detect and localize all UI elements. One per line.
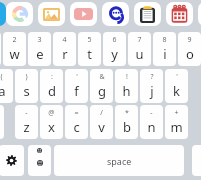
staticText: x (48, 118, 55, 136)
staticText: 8 (162, 35, 167, 45)
staticText: * (125, 108, 129, 118)
button[interactable]: ) (15, 69, 38, 103)
staticText: j (150, 82, 154, 100)
button[interactable]: & (90, 69, 113, 103)
staticText: ? (150, 72, 154, 82)
staticText: u (135, 45, 144, 63)
staticText: f (74, 82, 79, 100)
staticText: ' (176, 72, 178, 82)
button[interactable]: + (165, 105, 188, 139)
button[interactable]: ? (140, 69, 163, 103)
staticText: w (9, 45, 20, 63)
button[interactable]: Clipboard (134, 2, 161, 26)
staticText: i (163, 45, 167, 63)
staticText: space (107, 155, 132, 167)
staticText: 9 (187, 35, 192, 45)
staticText: n (147, 118, 156, 136)
button[interactable]: Google (6, 2, 33, 26)
button[interactable]: Photos (38, 2, 65, 26)
staticText: a (0, 82, 6, 100)
button[interactable]: Enter (192, 145, 201, 176)
staticText: ( (0, 72, 3, 82)
button[interactable]: 6 (103, 32, 126, 66)
button[interactable]: ' (65, 69, 88, 103)
staticText: 2 (12, 35, 17, 45)
staticText: b (123, 118, 131, 136)
staticText: c (73, 118, 80, 136)
button[interactable]: space (54, 145, 184, 176)
button[interactable]: * (115, 105, 138, 139)
button[interactable]: Emoji (28, 145, 51, 176)
staticText: - (25, 108, 28, 118)
button[interactable]: @ (40, 105, 63, 139)
button[interactable]: Shift (0, 105, 4, 139)
staticText: t (87, 45, 92, 63)
staticText: v (98, 118, 105, 136)
staticText: - (150, 108, 153, 118)
button[interactable]: / (90, 105, 113, 139)
staticText: 3 (37, 35, 42, 45)
staticText: e (36, 45, 44, 63)
staticText: o (186, 45, 194, 63)
button[interactable]: ! (115, 69, 138, 103)
button[interactable]: 7 (128, 32, 151, 66)
button[interactable]: 1 (0, 32, 1, 66)
staticText: ) (25, 72, 28, 82)
button[interactable]: Settings (0, 145, 24, 176)
button[interactable]: ( (0, 69, 13, 103)
button[interactable]: - (140, 105, 163, 139)
staticText: m (170, 118, 183, 136)
button[interactable]: : (40, 69, 63, 103)
button[interactable]: Messages (102, 2, 129, 26)
button[interactable]: 5 (78, 32, 101, 66)
staticText: k (173, 82, 180, 100)
button[interactable]: More (198, 2, 201, 26)
staticText: h (122, 82, 131, 100)
staticText: 7 (137, 35, 142, 45)
button[interactable]: Search (0, 2, 6, 26)
staticText: s (23, 82, 30, 100)
staticText: : (51, 72, 53, 82)
staticText: / (100, 108, 103, 118)
staticText: ! (126, 72, 128, 82)
staticText: d (48, 82, 56, 100)
button[interactable]: YouTube (70, 2, 97, 26)
staticText: z (23, 118, 30, 136)
staticText: @ (48, 108, 55, 118)
button[interactable]: ' (165, 69, 188, 103)
button[interactable]: 2 (3, 32, 26, 66)
staticText: 5 (87, 35, 92, 45)
button[interactable]: 9 (178, 32, 201, 66)
staticText: g (98, 82, 106, 100)
button[interactable]: = (65, 105, 88, 139)
button[interactable]: 4 (53, 32, 76, 66)
staticText: + (174, 108, 179, 118)
staticText: r (62, 45, 68, 63)
staticText: = (74, 108, 79, 118)
staticText: y (111, 45, 118, 63)
staticText: ' (76, 72, 78, 82)
button[interactable]: - (15, 105, 38, 139)
staticText: & (99, 72, 105, 82)
button[interactable]: 8 (153, 32, 176, 66)
staticText: 6 (112, 35, 117, 45)
staticText: 4 (62, 35, 67, 45)
button[interactable]: Calendar (166, 2, 193, 26)
button[interactable]: 3 (28, 32, 51, 66)
